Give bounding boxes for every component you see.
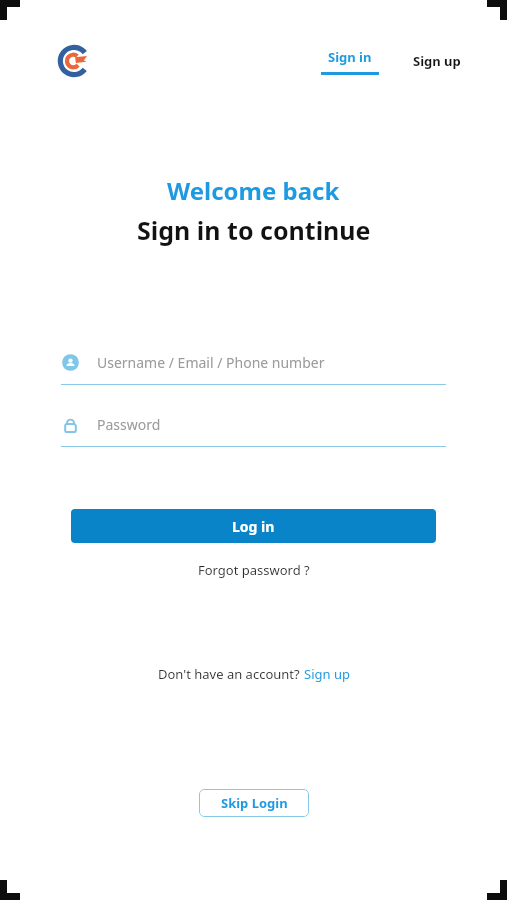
staticText: Skip Login [221,794,288,812]
staticText: Log in [232,517,275,536]
button[interactable]: Username / Email / Phone number [61,347,446,377]
button[interactable]: Forgot password ? [194,557,314,583]
button[interactable]: Log in [71,509,436,543]
staticText: Don't have an account? [158,665,304,683]
staticText: Username / Email / Phone number [97,353,325,372]
staticText: Sign up [304,665,350,683]
staticText: Password [97,415,161,434]
staticText: Sign in to continue [137,213,371,247]
staticText: Forgot password ? [198,561,310,579]
button[interactable]: Password [61,409,446,439]
staticText: Welcome back [167,174,340,207]
staticText: Sign up [413,52,461,70]
button[interactable]: Sign up [409,48,465,74]
button[interactable]: Sign up [304,665,350,683]
staticText: Sign in [328,48,372,66]
button[interactable]: Skip Login [199,789,309,817]
button[interactable]: Sign in [317,48,383,75]
other: App logo [55,42,93,80]
